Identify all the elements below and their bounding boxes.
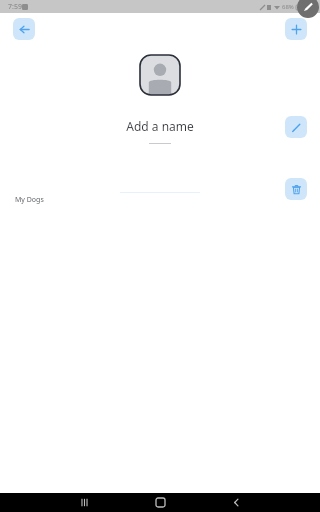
button[interactable]: Recent apps (72, 493, 96, 512)
button[interactable]: Profile photo (140, 55, 180, 95)
button[interactable]: Stylus (297, 0, 319, 18)
button[interactable]: Back (224, 493, 248, 512)
button[interactable]: My Dogs (15, 195, 44, 205)
button[interactable]: Back (13, 18, 35, 40)
staticText: 7:59 (8, 2, 22, 12)
button[interactable]: Edit name (285, 116, 307, 138)
button[interactable]: Add (285, 18, 307, 40)
button[interactable]: Delete (285, 178, 307, 200)
staticText: Add a name (126, 118, 194, 134)
staticText: 68% (282, 3, 294, 11)
button[interactable]: Home (148, 493, 172, 512)
button[interactable]: Add a name (126, 118, 194, 144)
